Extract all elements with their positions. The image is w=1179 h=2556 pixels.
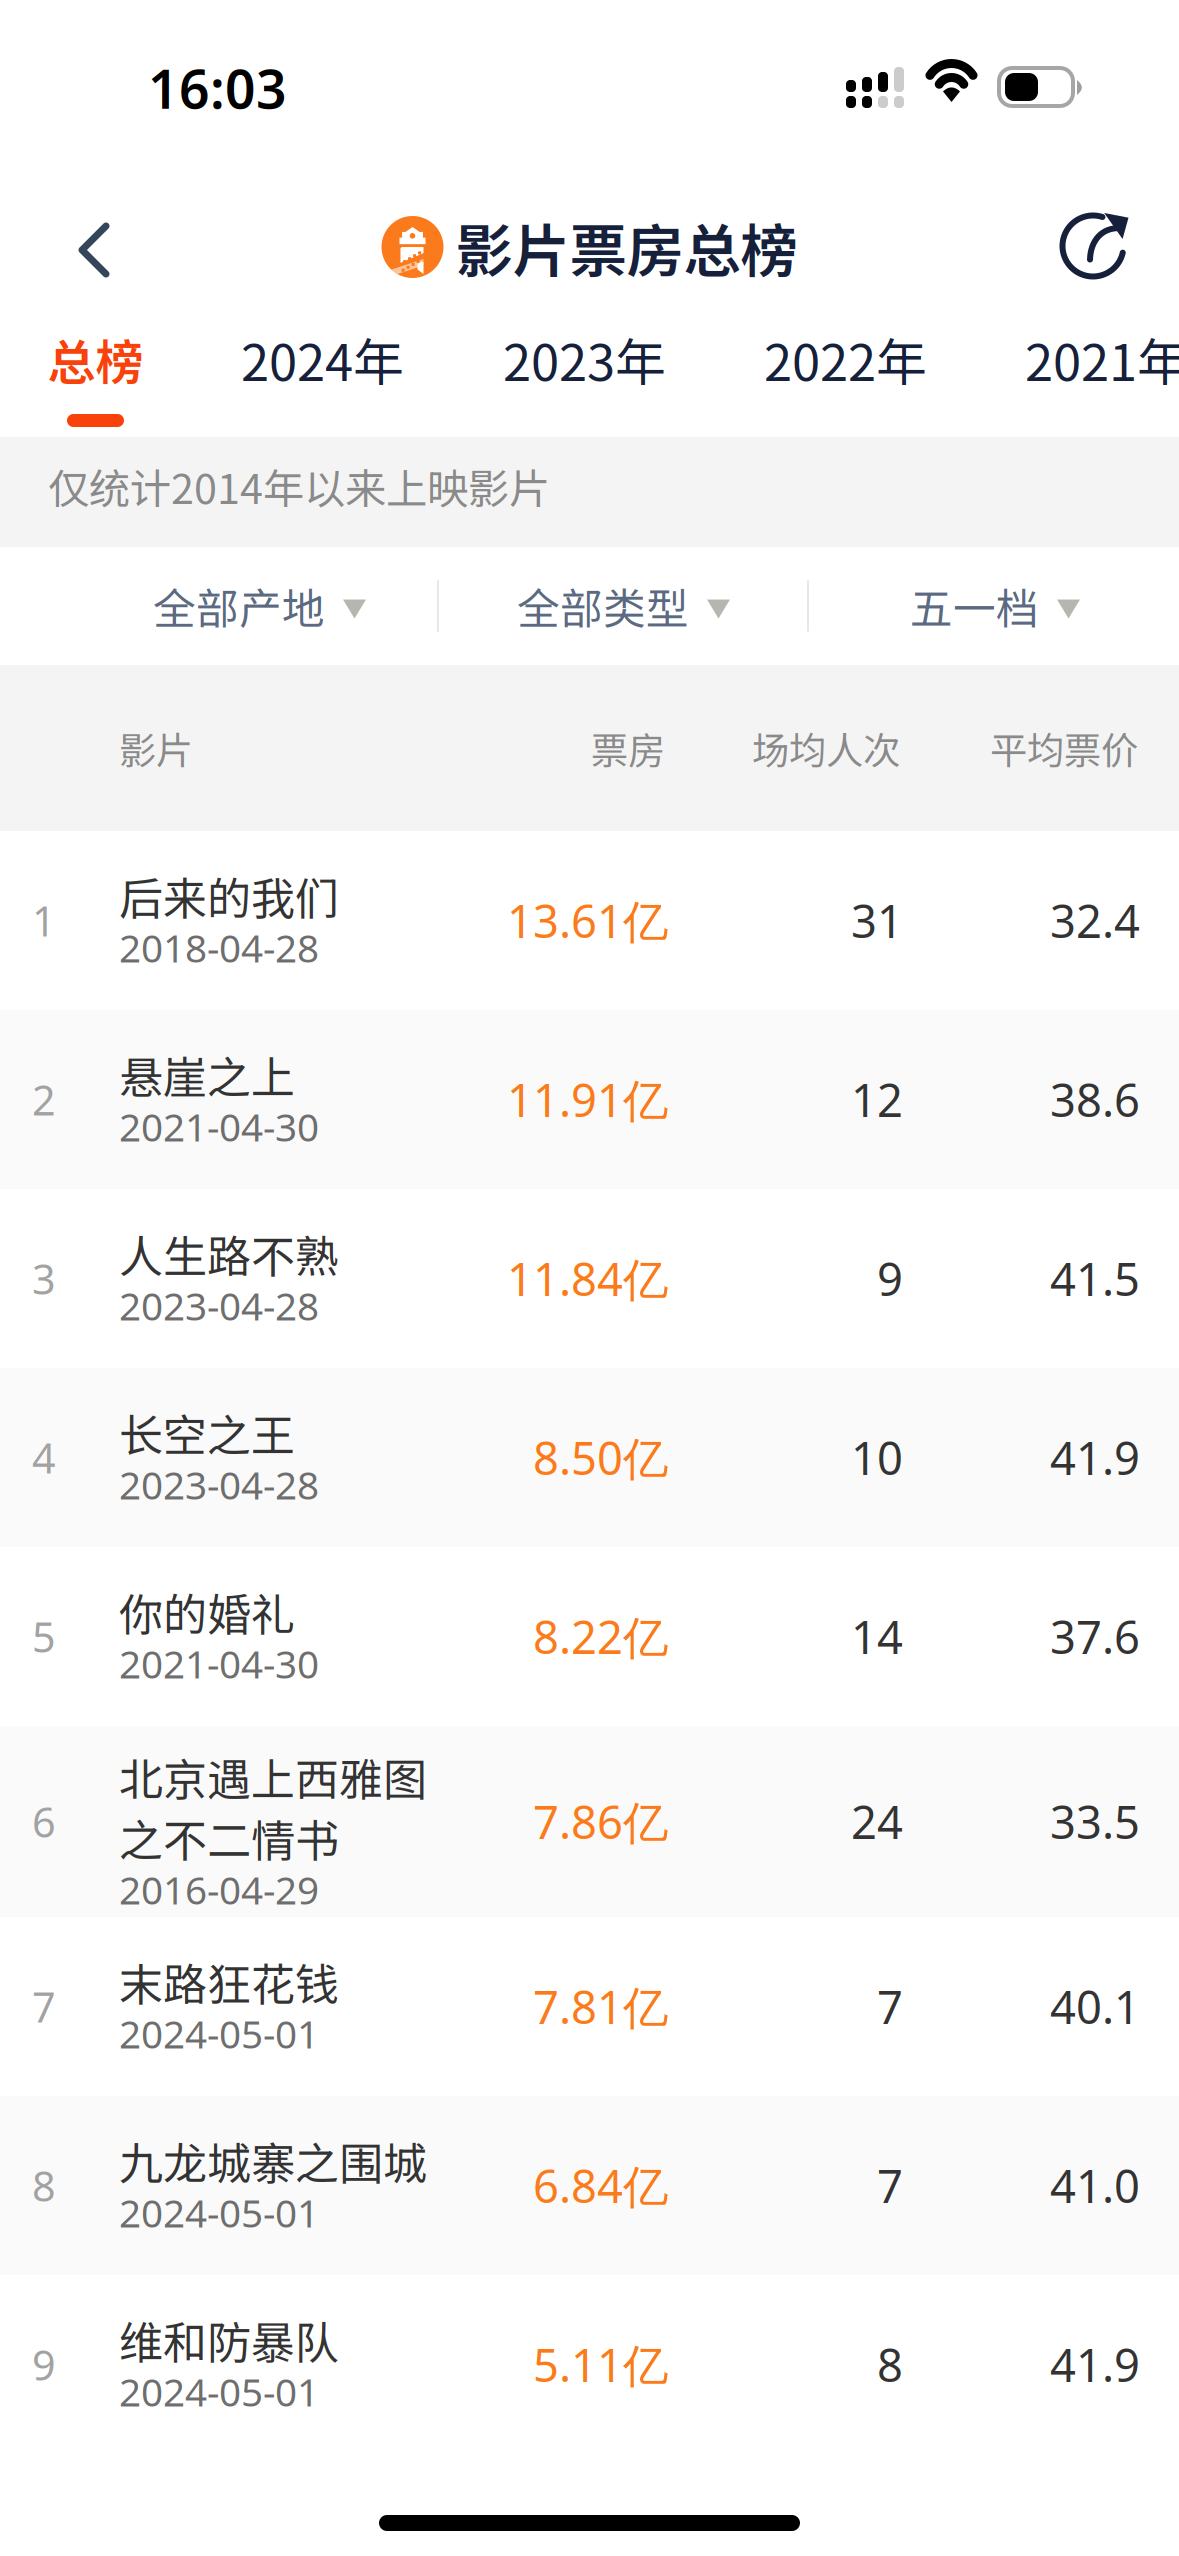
staticText: 长空之王 — [119, 1401, 295, 1464]
button[interactable]: 1 — [0, 831, 1179, 1010]
staticText: 全部类型 — [517, 575, 689, 637]
staticText: 16:03 — [148, 53, 287, 123]
button[interactable]: 全部产地 — [153, 547, 381, 665]
staticText: 2021-04-30 — [119, 1101, 319, 1152]
staticText: 11.91亿 — [507, 1069, 668, 1130]
staticText: 8.50亿 — [533, 1427, 668, 1488]
staticText: 2024年 — [241, 322, 404, 396]
staticText: 维和防暴队 — [119, 2308, 339, 2371]
button[interactable]: 3 — [0, 1189, 1179, 1368]
staticText: 31 — [851, 890, 903, 951]
staticText: 14 — [851, 1606, 903, 1667]
staticText: 6.84亿 — [533, 2155, 668, 2216]
staticText: 10 — [851, 1427, 903, 1488]
staticText: 12 — [851, 1069, 903, 1130]
staticText: 41.0 — [1050, 2155, 1140, 2216]
staticText: 7 — [877, 1976, 903, 2037]
staticText: 3 — [32, 1251, 56, 1306]
staticText: 7 — [32, 1979, 56, 2034]
button[interactable]: 8 — [0, 2096, 1179, 2275]
staticText: 38.6 — [1050, 1069, 1140, 1130]
staticText: 7.81亿 — [533, 1976, 668, 2037]
staticText: 悬崖之上 — [119, 1043, 295, 1106]
staticText: 1 — [32, 893, 56, 948]
staticText: 票房 — [591, 721, 665, 775]
staticText: 41.9 — [1050, 2334, 1140, 2395]
staticText: 7 — [877, 2155, 903, 2216]
staticText: 影片票房总榜 — [455, 205, 797, 288]
staticText: 人生路不熟 — [119, 1222, 339, 1285]
button[interactable]: 全部类型 — [517, 547, 749, 665]
staticText: 8 — [877, 2334, 903, 2395]
staticText: 6 — [32, 1794, 56, 1849]
staticText: 24 — [851, 1791, 903, 1852]
staticText: 2021-04-30 — [119, 1638, 319, 1689]
staticText: 影片 — [119, 721, 193, 775]
button[interactable]: 7 — [0, 1917, 1179, 2096]
staticText: 2 — [32, 1072, 56, 1127]
staticText: 8.22亿 — [533, 1606, 668, 1667]
staticText: 7.86亿 — [533, 1791, 668, 1852]
button[interactable]: 6 — [0, 1726, 1179, 1917]
staticText: 9 — [877, 1248, 903, 1309]
staticText: 九龙城寨之围城 — [119, 2129, 427, 2192]
staticText: 北京遇上西雅图 — [119, 1745, 427, 1808]
staticText: 2023年 — [503, 322, 666, 396]
staticText: 2024-05-01 — [119, 2366, 319, 2417]
staticText: 2024-05-01 — [119, 2008, 319, 2059]
staticText: 13.61亿 — [507, 890, 668, 951]
staticText: 末路狂花钱 — [119, 1950, 339, 2013]
staticText: 37.6 — [1050, 1606, 1140, 1667]
button[interactable]: 5 — [0, 1547, 1179, 1726]
staticText: 场均人次 — [752, 721, 900, 775]
button[interactable]: 五一档 — [910, 547, 1102, 665]
staticText: 9 — [32, 2337, 56, 2392]
staticText: 后来的我们 — [119, 864, 339, 927]
button[interactable]: 返回 — [36, 192, 152, 308]
staticText: 2021年 — [1025, 322, 1179, 396]
button[interactable]: 2023年 — [479, 310, 690, 437]
button[interactable]: 2 — [0, 1010, 1179, 1189]
staticText: 平均票价 — [990, 721, 1138, 775]
staticText: 40.1 — [1050, 1976, 1140, 2037]
staticText: 2018-04-28 — [119, 922, 319, 973]
button[interactable]: 2022年 — [740, 310, 951, 437]
staticText: 41.9 — [1050, 1427, 1140, 1488]
staticText: 2023-04-28 — [119, 1459, 319, 1510]
button[interactable]: 总榜 — [24, 310, 167, 437]
button[interactable]: 分享 — [1035, 188, 1151, 304]
button[interactable]: 4 — [0, 1368, 1179, 1547]
staticText: 4 — [32, 1430, 56, 1485]
staticText: 2024-05-01 — [119, 2187, 319, 2238]
staticText: 五一档 — [910, 575, 1039, 637]
staticText: 之不二情书 — [119, 1806, 339, 1869]
button[interactable]: 2021年 — [1001, 310, 1179, 437]
staticText: 32.4 — [1050, 890, 1140, 951]
staticText: 33.5 — [1050, 1791, 1140, 1852]
staticText: 5.11亿 — [533, 2334, 668, 2395]
staticText: 仅统计2014年以来上映影片 — [48, 456, 550, 516]
staticText: 8 — [32, 2158, 56, 2213]
staticText: 总榜 — [47, 324, 143, 394]
staticText: 41.5 — [1050, 1248, 1140, 1309]
button[interactable]: 2024年 — [217, 310, 428, 437]
button[interactable]: 9 — [0, 2275, 1179, 2454]
staticText: 全部产地 — [153, 575, 325, 637]
staticText: 2022年 — [764, 322, 927, 396]
staticText: 11.84亿 — [507, 1248, 668, 1309]
staticText: 你的婚礼 — [119, 1580, 295, 1643]
staticText: 2016-04-29 — [119, 1864, 319, 1915]
staticText: 2023-04-28 — [119, 1280, 319, 1331]
staticText: 5 — [32, 1609, 56, 1664]
